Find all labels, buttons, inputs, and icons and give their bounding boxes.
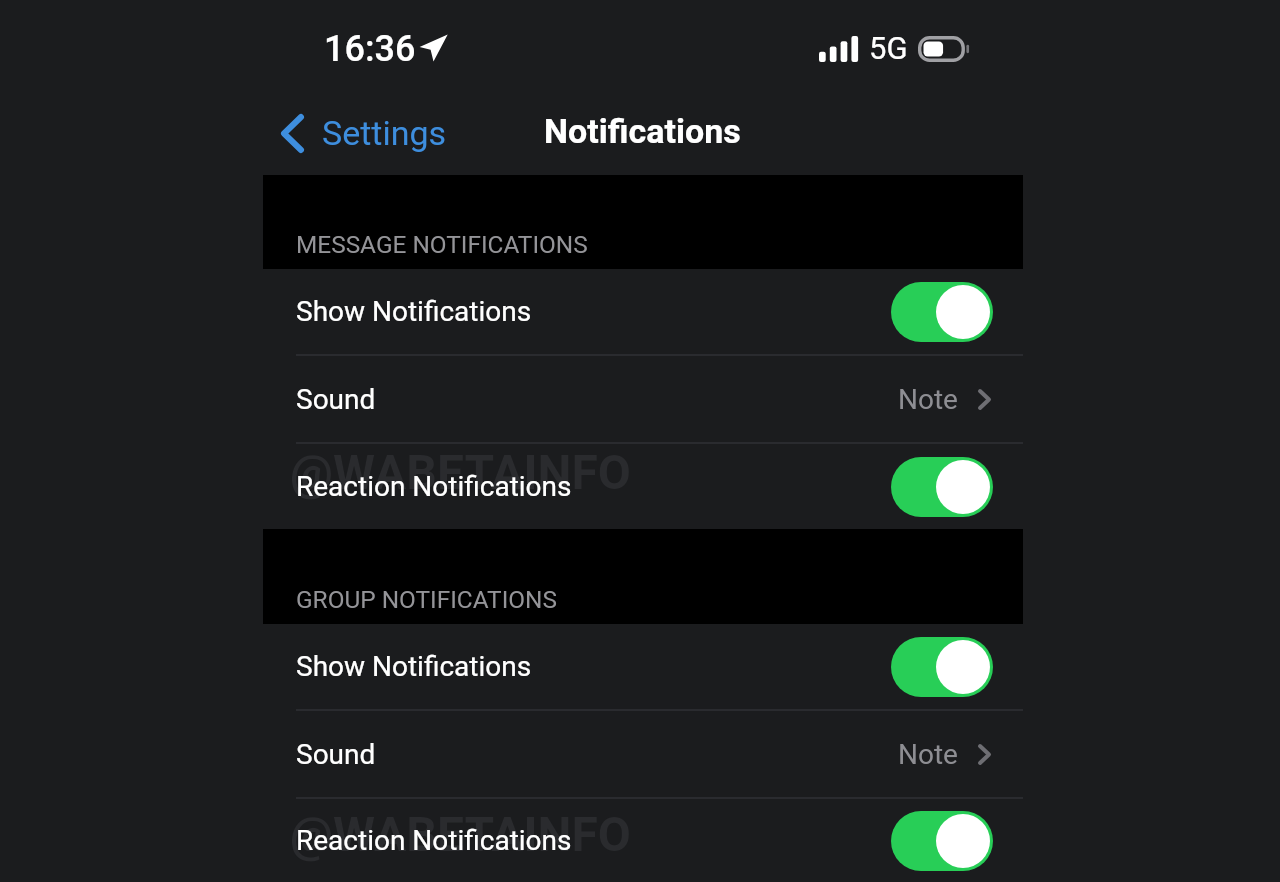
staticText: GROUP NOTIFICATIONS bbox=[296, 585, 557, 614]
button[interactable]: Back to Settings bbox=[271, 103, 457, 163]
staticText: Sound bbox=[296, 383, 376, 416]
staticText: Show Notifications bbox=[296, 295, 532, 328]
staticText: Note bbox=[898, 383, 958, 416]
button[interactable]: @WABETAINFO bbox=[263, 799, 1023, 882]
button[interactable]: @WABETAINFO bbox=[263, 444, 1023, 529]
button[interactable]: Toggle bbox=[891, 457, 993, 517]
staticText: 16:36 bbox=[324, 28, 416, 70]
button[interactable]: Sound bbox=[263, 711, 1023, 797]
staticText: Reaction Notifications bbox=[296, 470, 572, 503]
button[interactable]: Toggle bbox=[891, 637, 993, 697]
staticText: Reaction Notifications bbox=[296, 824, 572, 857]
button[interactable]: Show Notifications bbox=[263, 624, 1023, 709]
other: Open bbox=[978, 389, 991, 410]
other: Open bbox=[978, 744, 991, 765]
staticText: Notifications bbox=[544, 111, 741, 151]
staticText: Sound bbox=[296, 738, 376, 771]
staticText: @WABETAINFO bbox=[290, 806, 631, 862]
staticText: Note bbox=[898, 738, 958, 771]
staticText: 5G bbox=[869, 30, 908, 66]
button[interactable]: Toggle bbox=[891, 282, 993, 342]
staticText: Show Notifications bbox=[296, 650, 532, 683]
button[interactable]: Sound bbox=[263, 356, 1023, 442]
button[interactable]: Toggle bbox=[891, 811, 993, 871]
staticText: Settings bbox=[322, 113, 447, 153]
button[interactable]: Show Notifications bbox=[263, 269, 1023, 354]
staticText: @WABETAINFO bbox=[290, 444, 631, 500]
staticText: MESSAGE NOTIFICATIONS bbox=[296, 230, 588, 259]
